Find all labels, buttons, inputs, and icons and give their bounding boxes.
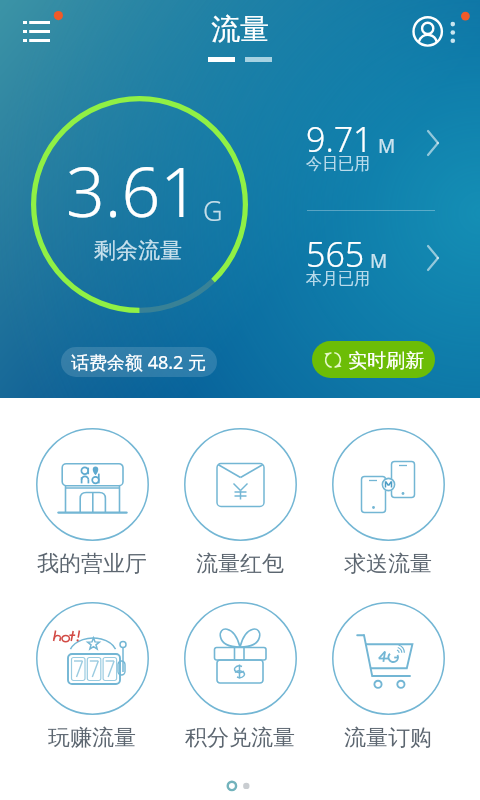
button[interactable]: 9.71	[306, 116, 446, 172]
staticText: 9.71	[306, 116, 373, 162]
button[interactable]: 流量订购	[314, 602, 462, 752]
staticText: 实时刷新	[348, 349, 424, 373]
staticText: 流量红包	[196, 550, 284, 578]
button[interactable]: 流量红包	[166, 428, 314, 578]
button[interactable]: 565	[306, 231, 446, 287]
staticText: 玩赚流量	[48, 724, 136, 752]
button[interactable]: Account	[408, 12, 448, 52]
button[interactable]: 玩赚流量	[18, 602, 166, 752]
staticText: 流量	[211, 11, 269, 48]
staticText: 今日已用	[306, 154, 370, 174]
staticText: 3.61	[66, 144, 200, 237]
staticText: 我的营业厅	[37, 550, 147, 578]
staticText: G	[203, 192, 223, 229]
button[interactable]: 求送流量	[314, 428, 462, 578]
button[interactable]: 积分兑流量	[166, 602, 314, 752]
button[interactable]: Menu	[14, 6, 66, 50]
button[interactable]: 我的营业厅	[18, 428, 166, 578]
button[interactable]: 话费余额 48.2 元	[61, 347, 217, 377]
button[interactable]: 实时刷新	[312, 341, 435, 378]
staticText: 积分兑流量	[185, 724, 295, 752]
staticText: 流量订购	[344, 724, 432, 752]
staticText: 本月已用	[306, 269, 370, 289]
staticText: 剩余流量	[94, 237, 182, 265]
staticText: M	[378, 133, 396, 159]
staticText: 565	[306, 231, 365, 277]
staticText: 求送流量	[344, 550, 432, 578]
staticText: M	[370, 248, 388, 274]
button[interactable]: More options	[444, 6, 478, 50]
staticText: 话费余额 48.2 元	[71, 350, 207, 375]
